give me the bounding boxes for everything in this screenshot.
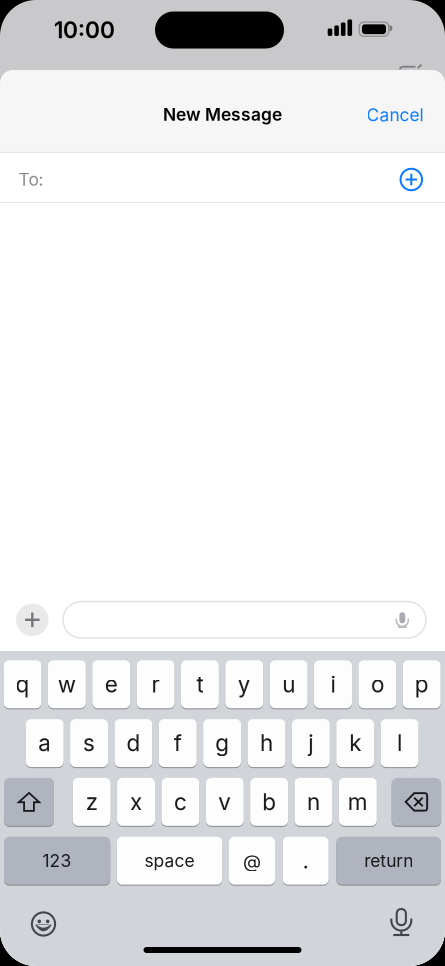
button[interactable]	[401, 169, 422, 190]
staticText: 123	[43, 850, 72, 871]
button[interactable]: s	[70, 719, 108, 767]
button[interactable]: l	[381, 719, 419, 767]
button[interactable]: q	[3, 660, 41, 708]
staticText: b	[262, 788, 276, 815]
button[interactable]	[4, 778, 54, 826]
staticText: x	[130, 788, 142, 815]
staticText: f	[174, 730, 182, 756]
button[interactable]	[31, 912, 55, 936]
staticText: v	[218, 788, 231, 815]
staticText: h	[260, 730, 273, 756]
staticText: @	[243, 850, 261, 872]
button[interactable]: a	[26, 719, 64, 767]
button[interactable]: b	[250, 778, 288, 826]
button[interactable]: w	[48, 660, 86, 708]
staticText: 10:00	[54, 17, 115, 43]
button[interactable]: y	[225, 660, 263, 708]
button[interactable]: h	[247, 719, 285, 767]
button[interactable]: v	[206, 778, 244, 826]
staticText: z	[86, 788, 98, 815]
staticText: New Message	[163, 104, 282, 125]
button[interactable]: i	[314, 660, 352, 708]
staticText: To:	[18, 169, 43, 190]
button[interactable]: p	[403, 660, 441, 708]
button[interactable]: m	[339, 778, 377, 826]
button[interactable]: j	[292, 719, 330, 767]
staticText: y	[238, 671, 251, 698]
staticText: w	[58, 671, 76, 698]
button[interactable]: space	[117, 837, 222, 885]
button[interactable]: c	[161, 778, 199, 826]
staticText: j	[308, 730, 313, 756]
staticText: return	[364, 850, 413, 871]
staticText: t	[196, 671, 203, 698]
button[interactable]: u	[270, 660, 308, 708]
staticText: c	[174, 788, 187, 815]
staticText: a	[38, 730, 51, 756]
button[interactable]: r	[137, 660, 175, 708]
staticText: u	[282, 671, 295, 698]
button[interactable]: n	[294, 778, 332, 826]
staticText: space	[144, 850, 194, 871]
staticText: r	[152, 671, 160, 698]
staticText: d	[126, 730, 140, 756]
button[interactable]: .	[283, 837, 329, 885]
button[interactable]: Cancel	[366, 105, 423, 125]
button[interactable]: g	[203, 719, 241, 767]
staticText: n	[307, 788, 320, 815]
staticText: q	[15, 671, 29, 698]
button[interactable]	[392, 778, 441, 826]
staticText: g	[215, 730, 229, 756]
button[interactable]: e	[92, 660, 130, 708]
staticText: e	[105, 671, 118, 698]
staticText: i	[330, 671, 335, 698]
staticText: .	[303, 848, 309, 873]
button[interactable]	[391, 909, 411, 936]
staticText: l	[397, 730, 402, 756]
staticText: k	[349, 730, 361, 756]
staticText: s	[83, 730, 95, 756]
button[interactable]: k	[336, 719, 374, 767]
button[interactable]: To:	[0, 152, 445, 202]
button[interactable]: return	[336, 837, 441, 885]
staticText: Cancel	[366, 105, 423, 125]
staticText: m	[348, 788, 368, 815]
button[interactable]: 123	[4, 837, 110, 885]
button[interactable]	[16, 603, 48, 636]
button[interactable]: d	[114, 719, 152, 767]
button[interactable]: t	[181, 660, 219, 708]
button[interactable]: o	[358, 660, 396, 708]
staticText: o	[371, 671, 384, 698]
button[interactable]	[396, 612, 408, 628]
button[interactable]	[63, 601, 426, 638]
button[interactable]: f	[159, 719, 197, 767]
button[interactable]: x	[117, 778, 155, 826]
staticText: p	[415, 671, 429, 698]
button[interactable]: z	[73, 778, 111, 826]
button[interactable]: @	[229, 837, 275, 885]
